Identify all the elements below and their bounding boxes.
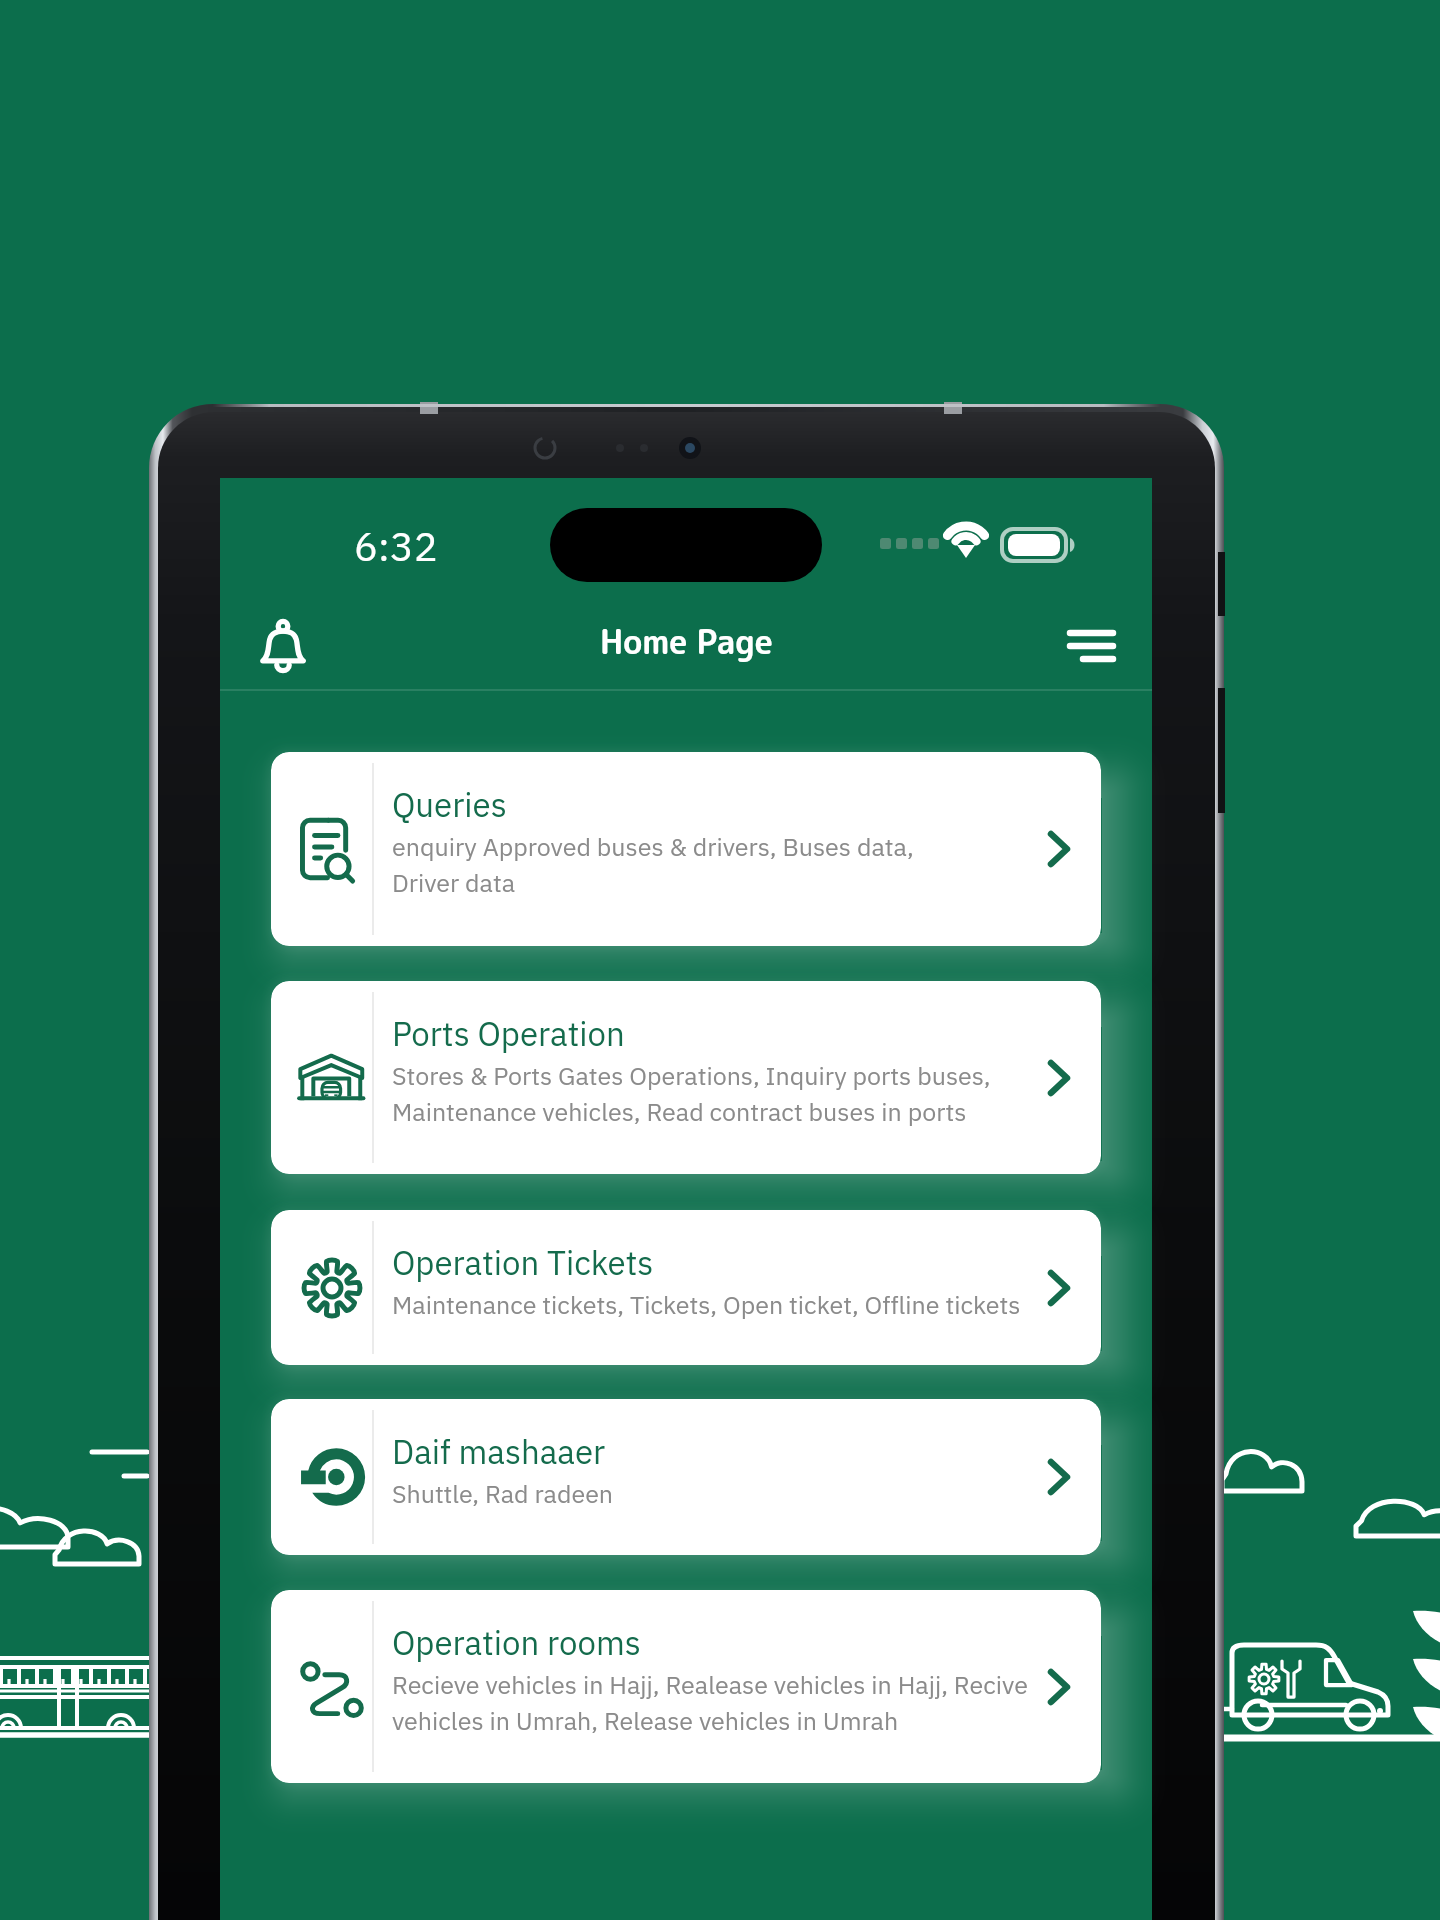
staticText: Home Page bbox=[600, 619, 773, 665]
staticText: Maintenance tickets, Tickets, Open ticke… bbox=[392, 1288, 1021, 1321]
staticText: vehicles in Umrah, Release vehicles in U… bbox=[392, 1704, 899, 1737]
staticText: Maintenance vehicles, Read contract buse… bbox=[392, 1095, 967, 1128]
button[interactable]: Operation rooms bbox=[271, 1590, 1101, 1783]
button[interactable]: Menu bbox=[1046, 600, 1138, 691]
staticText: enquiry Approved buses & drivers, Buses … bbox=[392, 830, 914, 863]
button[interactable]: Daif mashaaer bbox=[271, 1399, 1101, 1555]
staticText: Stores & Ports Gates Operations, Inquiry… bbox=[392, 1059, 991, 1092]
button[interactable]: Ports Operation bbox=[271, 981, 1101, 1174]
button[interactable]: Queries bbox=[271, 752, 1101, 946]
staticText: Daif mashaaer bbox=[392, 1430, 606, 1473]
staticText: 6:32 bbox=[354, 520, 438, 572]
staticText: Queries bbox=[392, 783, 507, 826]
staticText: Ports Operation bbox=[392, 1012, 625, 1055]
button[interactable]: Operation Tickets bbox=[271, 1210, 1101, 1365]
button[interactable]: Notifications bbox=[237, 600, 329, 691]
staticText: Recieve vehicles in Hajj, Realease vehic… bbox=[392, 1668, 1028, 1701]
staticText: Operation rooms bbox=[392, 1621, 641, 1664]
staticText: Operation Tickets bbox=[392, 1241, 654, 1284]
staticText: Driver data bbox=[392, 866, 516, 899]
staticText: Shuttle, Rad radeen bbox=[392, 1477, 614, 1510]
